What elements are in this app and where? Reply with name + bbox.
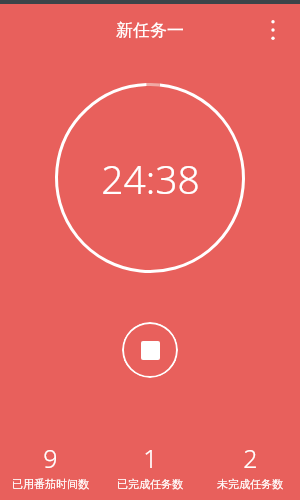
- staticText: 1: [143, 441, 158, 475]
- button[interactable]: 9: [0, 438, 100, 500]
- button[interactable]: 1: [100, 438, 200, 500]
- staticText: 已用番茄时间数: [12, 477, 89, 491]
- staticText: 未完成任务数: [217, 477, 283, 491]
- staticText: 9: [43, 441, 58, 475]
- staticText: 24:38: [101, 152, 200, 205]
- button[interactable]: Stop timer: [122, 322, 178, 378]
- staticText: 2: [243, 441, 258, 475]
- button[interactable]: 2: [200, 438, 300, 500]
- button[interactable]: More options: [259, 8, 287, 52]
- staticText: 新任务一: [116, 20, 184, 41]
- staticText: 已完成任务数: [117, 477, 183, 491]
